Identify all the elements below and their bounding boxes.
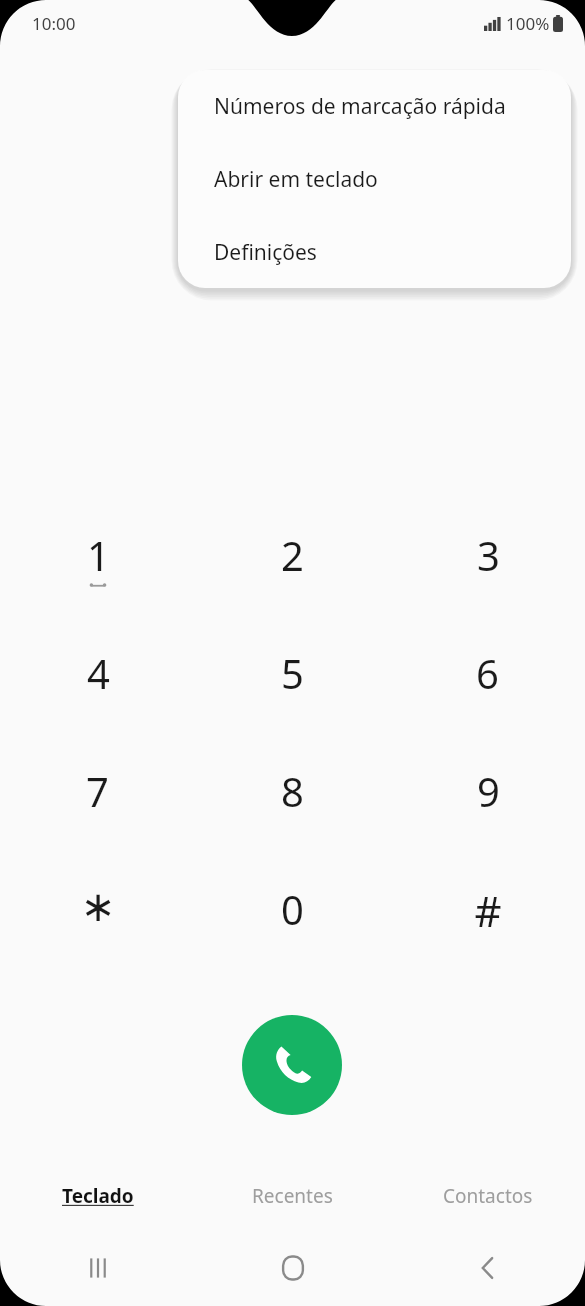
staticText: Contactos bbox=[443, 1183, 533, 1209]
button[interactable]: 7 bbox=[0, 764, 195, 822]
staticText: 6 bbox=[476, 646, 499, 700]
staticText: 8 bbox=[281, 764, 304, 818]
staticText: 10:00 bbox=[32, 12, 76, 35]
button[interactable]: 0 bbox=[195, 882, 390, 940]
staticText: 5 bbox=[281, 646, 304, 700]
button[interactable]: 6 bbox=[390, 646, 585, 704]
staticText: 3 bbox=[477, 528, 500, 582]
staticText: 1 bbox=[87, 528, 110, 582]
button[interactable]: Call bbox=[242, 1015, 342, 1115]
button[interactable]: Definições bbox=[178, 216, 571, 288]
staticText: Recentes bbox=[252, 1183, 333, 1209]
staticText: 7 bbox=[86, 764, 109, 818]
staticText: Definições bbox=[214, 238, 317, 267]
button[interactable]: Números de marcação rápida bbox=[178, 70, 571, 143]
button[interactable]: Contactos bbox=[390, 1168, 585, 1224]
button[interactable]: Recents bbox=[0, 1240, 195, 1296]
staticText: ∗ bbox=[80, 882, 116, 931]
staticText: Teclado bbox=[62, 1183, 134, 1209]
button[interactable]: 5 bbox=[195, 646, 390, 704]
button[interactable]: Home bbox=[195, 1240, 390, 1296]
button[interactable]: 1 bbox=[0, 528, 195, 586]
staticText: 100% bbox=[506, 12, 550, 35]
button[interactable]: 3 bbox=[390, 528, 585, 586]
staticText: 0 bbox=[281, 882, 304, 936]
staticText: Números de marcação rápida bbox=[214, 92, 506, 121]
button[interactable]: 8 bbox=[195, 764, 390, 822]
staticText: 4 bbox=[87, 646, 110, 700]
staticText: 2 bbox=[281, 528, 304, 582]
staticText: # bbox=[474, 882, 502, 939]
button[interactable]: Back bbox=[390, 1240, 585, 1296]
button[interactable]: 4 bbox=[0, 646, 195, 704]
button[interactable]: 2 bbox=[195, 528, 390, 586]
button[interactable]: # bbox=[390, 882, 585, 940]
button[interactable]: Teclado bbox=[0, 1168, 195, 1224]
button[interactable]: 9 bbox=[390, 764, 585, 822]
button[interactable]: ∗ bbox=[0, 882, 195, 940]
staticText: Abrir em teclado bbox=[214, 165, 378, 194]
button[interactable]: Abrir em teclado bbox=[178, 143, 571, 216]
button[interactable]: Recentes bbox=[195, 1168, 390, 1224]
staticText: 9 bbox=[477, 764, 500, 818]
